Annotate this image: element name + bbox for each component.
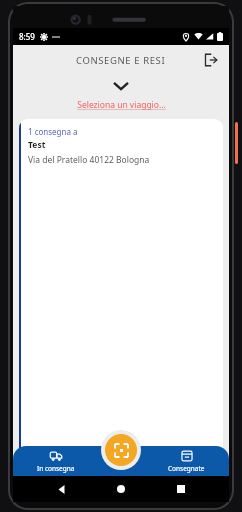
button[interactable]: Consegnate: [144, 446, 229, 476]
staticText: 8:59: [19, 31, 35, 42]
staticText: In consegna: [37, 464, 75, 473]
staticText: Seleziona un viaggio...: [77, 99, 166, 111]
button[interactable]: Espandi: [13, 75, 229, 97]
button[interactable]: Logout: [199, 48, 223, 72]
staticText: CONSEGNE E RESI: [76, 54, 166, 67]
staticText: Consegnate: [168, 464, 205, 473]
staticText: Via del Pratello 40122 Bologna: [28, 154, 150, 166]
button[interactable]: Home: [110, 478, 132, 500]
staticText: Test: [28, 139, 46, 151]
staticText: 1 consegna a: [28, 126, 78, 137]
button[interactable]: Indietro: [51, 478, 73, 500]
button[interactable]: Scansiona codice: [105, 434, 137, 466]
button[interactable]: Panoramica: [170, 478, 192, 500]
button[interactable]: 1 consegna a: [19, 119, 223, 476]
button[interactable]: In consegna: [13, 446, 98, 476]
button[interactable]: Seleziona un viaggio...: [13, 97, 229, 113]
